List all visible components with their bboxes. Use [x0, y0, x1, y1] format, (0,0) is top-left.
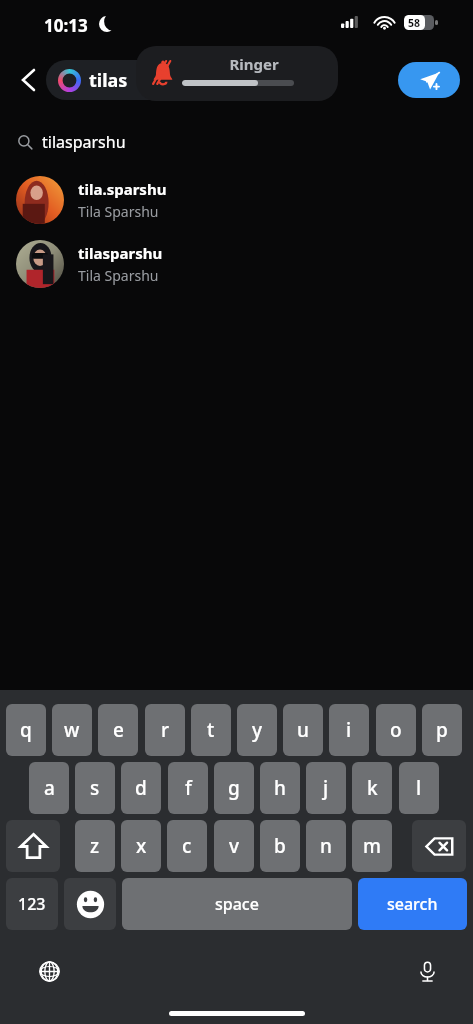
staticText: 10:13 [44, 14, 88, 37]
staticText: space [215, 893, 259, 915]
button[interactable]: 123 [6, 878, 58, 930]
staticText: f [185, 775, 192, 801]
staticText: 58 [408, 16, 421, 30]
staticText: t [207, 717, 215, 743]
staticText: b [274, 833, 286, 859]
button[interactable]: j [306, 762, 346, 814]
button[interactable]: n [306, 820, 346, 872]
staticText: v [229, 833, 240, 859]
button[interactable]: k [352, 762, 392, 814]
button[interactable]: d [121, 762, 161, 814]
button[interactable]: z [75, 820, 115, 872]
staticText: j [323, 775, 329, 801]
button[interactable]: i [329, 704, 369, 756]
staticText: tilasparshu [78, 243, 163, 263]
button[interactable]: tilas [46, 60, 336, 100]
button[interactable]: s [75, 762, 115, 814]
staticText: y [252, 717, 263, 743]
button[interactable]: tilasparshu [0, 125, 473, 159]
staticText: m [363, 833, 381, 859]
button[interactable]: m [352, 820, 392, 872]
staticText: tila.sparshu [78, 179, 167, 199]
button[interactable]: search [358, 878, 467, 930]
button[interactable]: g [214, 762, 254, 814]
button[interactable]: Voice input [408, 952, 446, 990]
button[interactable]: v [214, 820, 254, 872]
button[interactable]: h [260, 762, 300, 814]
button[interactable]: u [283, 704, 323, 756]
staticText: s [90, 775, 100, 801]
staticText: q [20, 717, 32, 743]
staticText: tilas [89, 68, 128, 93]
staticText: d [135, 775, 147, 801]
staticText: e [113, 717, 124, 743]
staticText: x [136, 833, 147, 859]
staticText: search [387, 893, 438, 915]
button[interactable]: tila.sparshu [0, 172, 473, 228]
staticText: c [182, 833, 192, 859]
button[interactable]: o [376, 704, 416, 756]
button[interactable]: t [191, 704, 231, 756]
button[interactable]: Change language [30, 952, 68, 990]
button[interactable]: p [422, 704, 462, 756]
staticText: Tila Sparshu [78, 266, 159, 285]
button[interactable]: c [167, 820, 207, 872]
button[interactable]: tilasparshu [0, 236, 473, 292]
staticText: r [161, 717, 170, 743]
button[interactable]: y [237, 704, 277, 756]
staticText: o [390, 717, 402, 743]
staticText: l [416, 775, 422, 801]
staticText: k [367, 775, 378, 801]
button[interactable]: a [29, 762, 69, 814]
staticText: h [274, 775, 286, 801]
staticText: w [64, 717, 80, 743]
button[interactable]: Shift [6, 820, 60, 872]
button[interactable]: space [122, 878, 352, 930]
button[interactable]: r [145, 704, 185, 756]
staticText: i [346, 717, 352, 743]
staticText: z [90, 833, 100, 859]
button[interactable]: Send [398, 62, 460, 98]
button[interactable]: q [6, 704, 46, 756]
button[interactable]: e [98, 704, 138, 756]
staticText: Ringer [229, 54, 279, 74]
staticText: p [436, 717, 448, 743]
staticText: n [320, 833, 332, 859]
button[interactable]: Back [8, 60, 48, 100]
button[interactable]: b [260, 820, 300, 872]
button[interactable]: x [121, 820, 161, 872]
staticText: u [297, 717, 309, 743]
staticText: g [228, 775, 240, 801]
staticText: Tila Sparshu [78, 202, 159, 221]
button[interactable]: Emoji [64, 878, 116, 930]
staticText: a [44, 775, 55, 801]
button[interactable]: Backspace [412, 820, 466, 872]
button[interactable]: w [52, 704, 92, 756]
button[interactable]: l [399, 762, 439, 814]
staticText: 123 [18, 893, 46, 915]
button[interactable]: f [168, 762, 208, 814]
staticText: tilasparshu [42, 131, 126, 153]
